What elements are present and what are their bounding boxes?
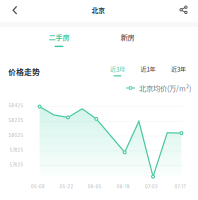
staticText: 06-05: [88, 184, 102, 189]
staticText: 5.8425: [8, 103, 23, 108]
staticText: 新房: [120, 32, 134, 42]
staticText: 近1年: [140, 65, 155, 73]
staticText: 北京均价(万/m²): [139, 83, 191, 93]
button[interactable]: 新房: [107, 29, 147, 49]
staticText: 5.7825: [9, 148, 23, 153]
button[interactable]: 近1年: [137, 63, 159, 77]
staticText: 05-22: [59, 184, 73, 189]
staticText: 近3月: [110, 65, 125, 73]
staticText: 07-03: [145, 184, 158, 189]
staticText: 05-08: [31, 184, 45, 189]
staticText: 价格走势: [8, 66, 40, 77]
staticText: 06-19: [117, 184, 130, 189]
button[interactable]: 近3月: [106, 63, 128, 77]
staticText: 北京: [91, 5, 105, 15]
staticText: 近3年: [171, 65, 186, 73]
staticText: 5.8025: [8, 133, 23, 138]
staticText: 二手房: [48, 32, 69, 42]
button[interactable]: 二手房: [39, 29, 79, 49]
staticText: 07-17: [174, 184, 185, 189]
staticText: 5.8225: [8, 118, 23, 123]
staticText: 5.7625: [9, 162, 23, 167]
button[interactable]: Back: [2, 0, 28, 21]
button[interactable]: 近3年: [167, 63, 189, 77]
button[interactable]: Share: [170, 0, 196, 20]
